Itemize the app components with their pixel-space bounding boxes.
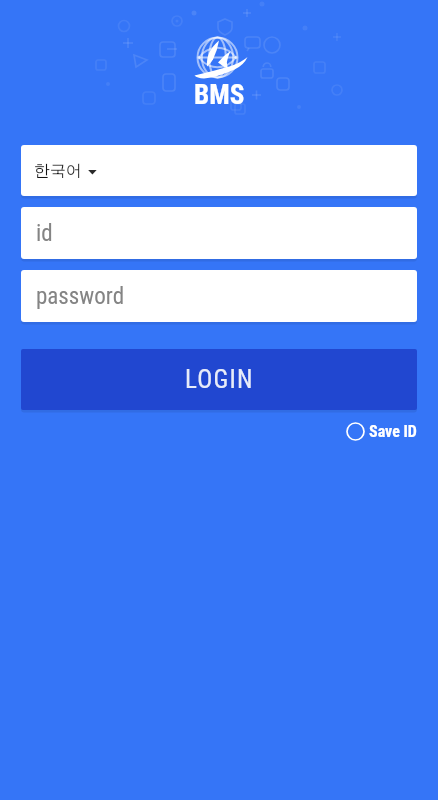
staticText: password: [36, 283, 125, 310]
staticText: BMS: [194, 79, 245, 111]
button[interactable]: LOGIN: [21, 349, 417, 410]
staticText: LOGIN: [185, 365, 254, 394]
button[interactable]: Save ID: [346, 422, 417, 441]
button[interactable]: id: [21, 207, 417, 259]
button[interactable]: password: [21, 270, 417, 322]
staticText: Save ID: [369, 422, 417, 441]
staticText: id: [36, 220, 53, 247]
staticText: 한국어: [34, 161, 82, 181]
button[interactable]: 한국어: [21, 145, 417, 196]
